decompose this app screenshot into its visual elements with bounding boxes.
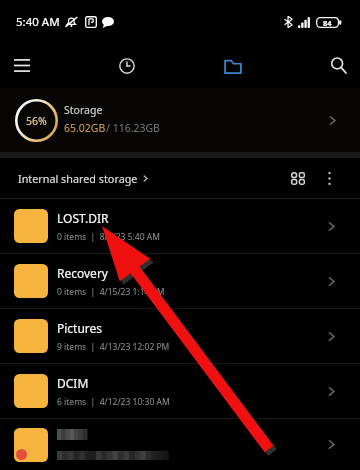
button[interactable]: Files bbox=[219, 43, 247, 88]
staticText: 65.02GB bbox=[64, 121, 106, 135]
button[interactable]: Grid view bbox=[283, 163, 313, 193]
button[interactable] bbox=[0, 419, 360, 470]
button[interactable]: Recovery bbox=[0, 254, 360, 308]
button[interactable]: 56% bbox=[0, 88, 360, 152]
staticText: Pictures bbox=[57, 320, 103, 336]
staticText: DCIM bbox=[57, 375, 89, 391]
staticText: 9 items | 4/13/23 12:02 PM bbox=[57, 341, 170, 353]
staticText: LOST.DIR bbox=[57, 210, 109, 226]
staticText: 0 items | 4/15/23 1:14 PM bbox=[57, 286, 165, 298]
button[interactable]: Menu bbox=[8, 43, 36, 88]
staticText: 84 bbox=[323, 18, 332, 28]
button[interactable]: LOST.DIR bbox=[0, 199, 360, 253]
staticText: 5:40 AM bbox=[16, 14, 60, 30]
staticText: 6 items | 4/12/23 10:30 AM bbox=[57, 396, 170, 408]
staticText: 56% bbox=[26, 114, 47, 128]
button[interactable]: Internal shared storage bbox=[18, 171, 151, 186]
button[interactable]: Search bbox=[324, 43, 352, 88]
button[interactable]: More options bbox=[317, 166, 341, 190]
button[interactable]: Recent files bbox=[113, 43, 141, 88]
button[interactable]: DCIM bbox=[0, 364, 360, 418]
button[interactable]: Pictures bbox=[0, 309, 360, 363]
staticText: / 116.23GB bbox=[106, 121, 160, 135]
staticText: Internal shared storage bbox=[18, 171, 138, 186]
staticText: Recovery bbox=[57, 265, 108, 281]
staticText: Storage bbox=[64, 103, 103, 117]
staticText: 0 items | 8/1/23 5:40 AM bbox=[57, 231, 160, 243]
